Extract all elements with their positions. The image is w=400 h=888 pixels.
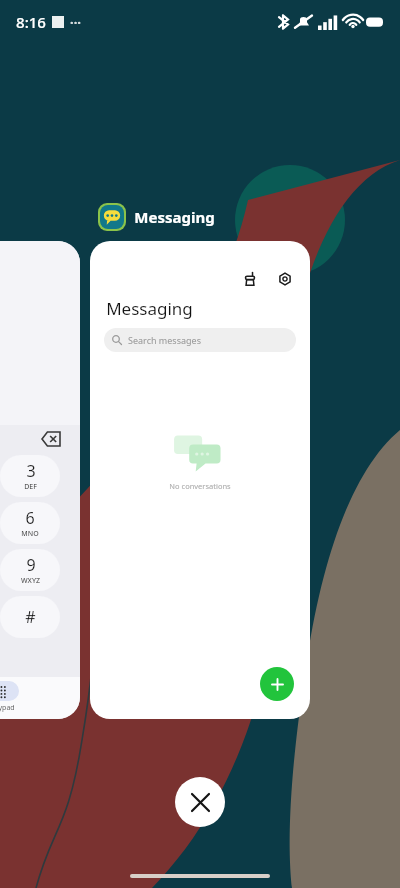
button[interactable]: Clean up [90,241,310,719]
staticText: # [25,606,36,628]
button[interactable]: Search messages [104,328,296,352]
staticText: Keypad [0,703,15,713]
staticText: ··· [70,13,81,31]
button[interactable]: New conversation [260,667,294,701]
staticText: MNO [21,529,39,539]
button[interactable]: 6 [0,502,60,544]
button[interactable]: 3 [0,455,60,497]
staticText: Messaging [106,297,193,320]
staticText: 6 [25,507,35,529]
staticText: 3 [26,460,36,482]
staticText: DEF [24,482,37,492]
button[interactable]: Keypad [0,681,22,713]
button[interactable]: 9 [0,549,60,591]
button[interactable]: # [0,596,60,638]
button[interactable]: Settings [274,268,296,290]
staticText: WXYZ [21,576,40,586]
staticText: Messaging [134,207,215,227]
staticText: 8:16 [16,12,46,32]
button[interactable]: 3 [0,241,80,719]
button[interactable]: Clean up [239,268,261,290]
staticText: Search messages [128,334,201,346]
staticText: No conversations [169,481,231,491]
button[interactable]: Close all [175,777,225,827]
staticText: 9 [26,554,36,576]
